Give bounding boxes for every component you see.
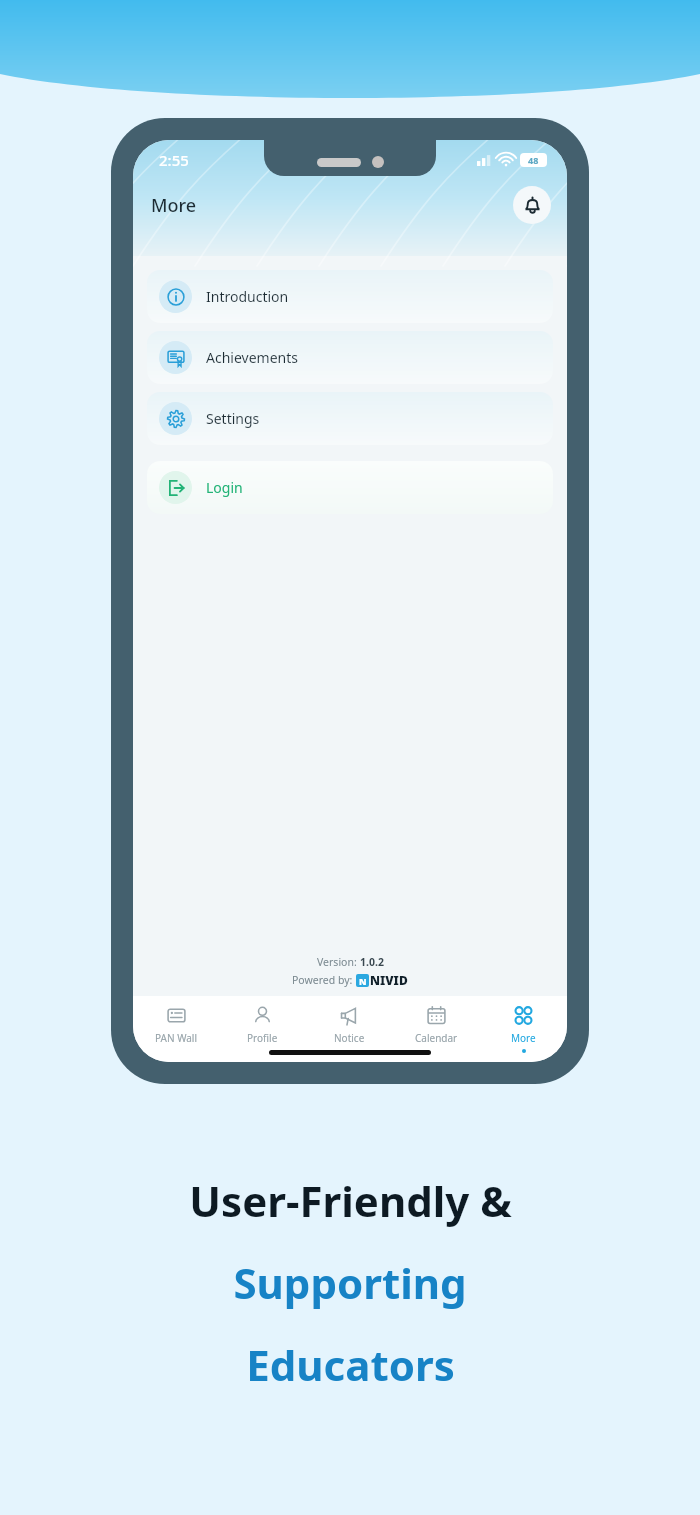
staticText: Version: — [317, 955, 360, 969]
staticText: Introduction — [206, 287, 289, 306]
button[interactable]: Login — [147, 461, 553, 514]
staticText: Login — [206, 478, 243, 497]
staticText: Settings — [206, 409, 260, 428]
staticText: More — [511, 1031, 536, 1045]
staticText: 2:55 — [159, 150, 189, 170]
staticText: Profile — [247, 1031, 278, 1045]
button[interactable]: Calendar — [393, 996, 480, 1062]
staticText: NIVID — [370, 972, 408, 988]
staticText: Calendar — [415, 1031, 458, 1045]
staticText: N — [359, 975, 367, 987]
button[interactable]: Profile — [219, 996, 306, 1062]
button[interactable]: Settings — [147, 392, 553, 445]
button[interactable]: PAN Wall — [133, 996, 219, 1062]
staticText: More — [151, 193, 197, 218]
staticText: 1.0.2 — [360, 955, 384, 969]
staticText: Supporting — [233, 1254, 467, 1311]
staticText: Achievements — [206, 348, 298, 367]
staticText: Notice — [334, 1031, 365, 1045]
button[interactable]: Achievements — [147, 331, 553, 384]
staticText: Educators — [246, 1336, 455, 1393]
button[interactable]: Notifications — [513, 186, 551, 224]
staticText: Powered by: — [292, 973, 356, 987]
button[interactable]: Introduction — [147, 270, 553, 323]
staticText: User-Friendly & — [189, 1172, 512, 1229]
staticText: 48 — [528, 154, 539, 166]
button[interactable]: More — [480, 996, 567, 1062]
button[interactable]: Notice — [306, 996, 393, 1062]
staticText: PAN Wall — [155, 1031, 198, 1045]
